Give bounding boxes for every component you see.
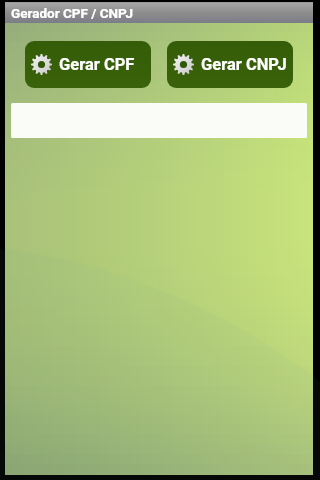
staticText: Gerar CNPJ xyxy=(201,55,287,74)
staticText: Gerar CPF xyxy=(59,55,135,74)
button[interactable]: Gerar CPF xyxy=(25,41,151,88)
staticText: Gerador CPF / CNPJ xyxy=(11,5,133,21)
button[interactable]: Gerar CNPJ xyxy=(167,41,293,88)
